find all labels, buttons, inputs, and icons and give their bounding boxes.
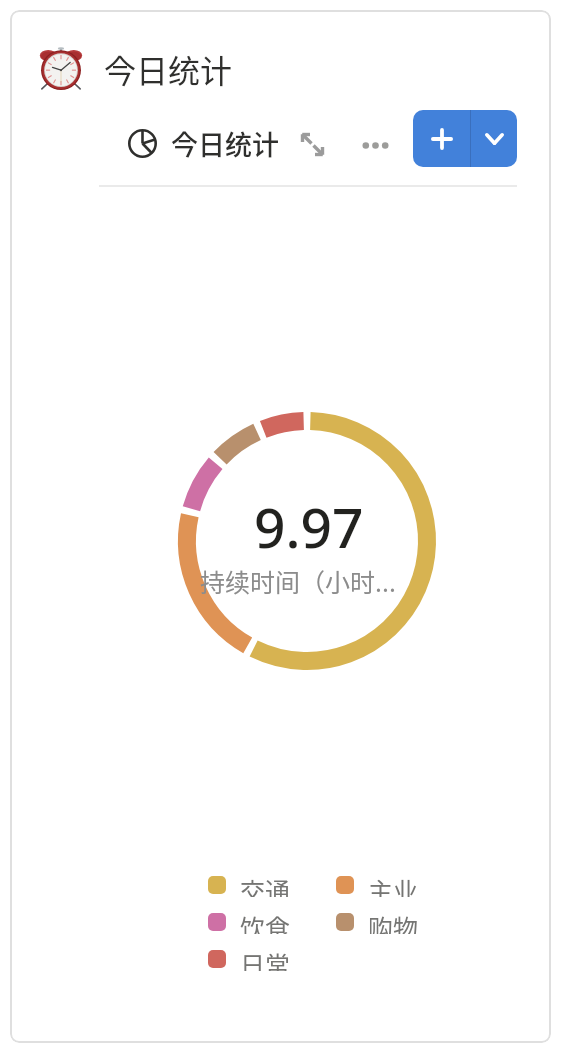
staticText: 交通: [240, 872, 291, 897]
button[interactable]: 交通: [208, 872, 291, 897]
button[interactable]: 日常: [208, 946, 291, 971]
button[interactable]: 今日统计: [128, 121, 279, 165]
staticText: 主业: [368, 872, 419, 897]
button[interactable]: 主业: [336, 872, 419, 897]
button[interactable]: Expand: [295, 127, 329, 161]
button[interactable]: Show options: [471, 110, 517, 167]
staticText: 饮食: [240, 909, 291, 934]
staticText: 日常: [240, 946, 291, 971]
staticText: 今日统计: [171, 124, 279, 163]
button[interactable]: Add: [413, 110, 470, 167]
staticText: 今日统计: [104, 46, 233, 92]
button[interactable]: More: [357, 127, 393, 163]
staticText: 购物: [368, 909, 419, 934]
button[interactable]: 饮食: [208, 909, 291, 934]
staticText: 9.97: [254, 489, 364, 564]
button[interactable]: 购物: [336, 909, 419, 934]
staticText: 持续时间（小时...: [200, 563, 396, 599]
